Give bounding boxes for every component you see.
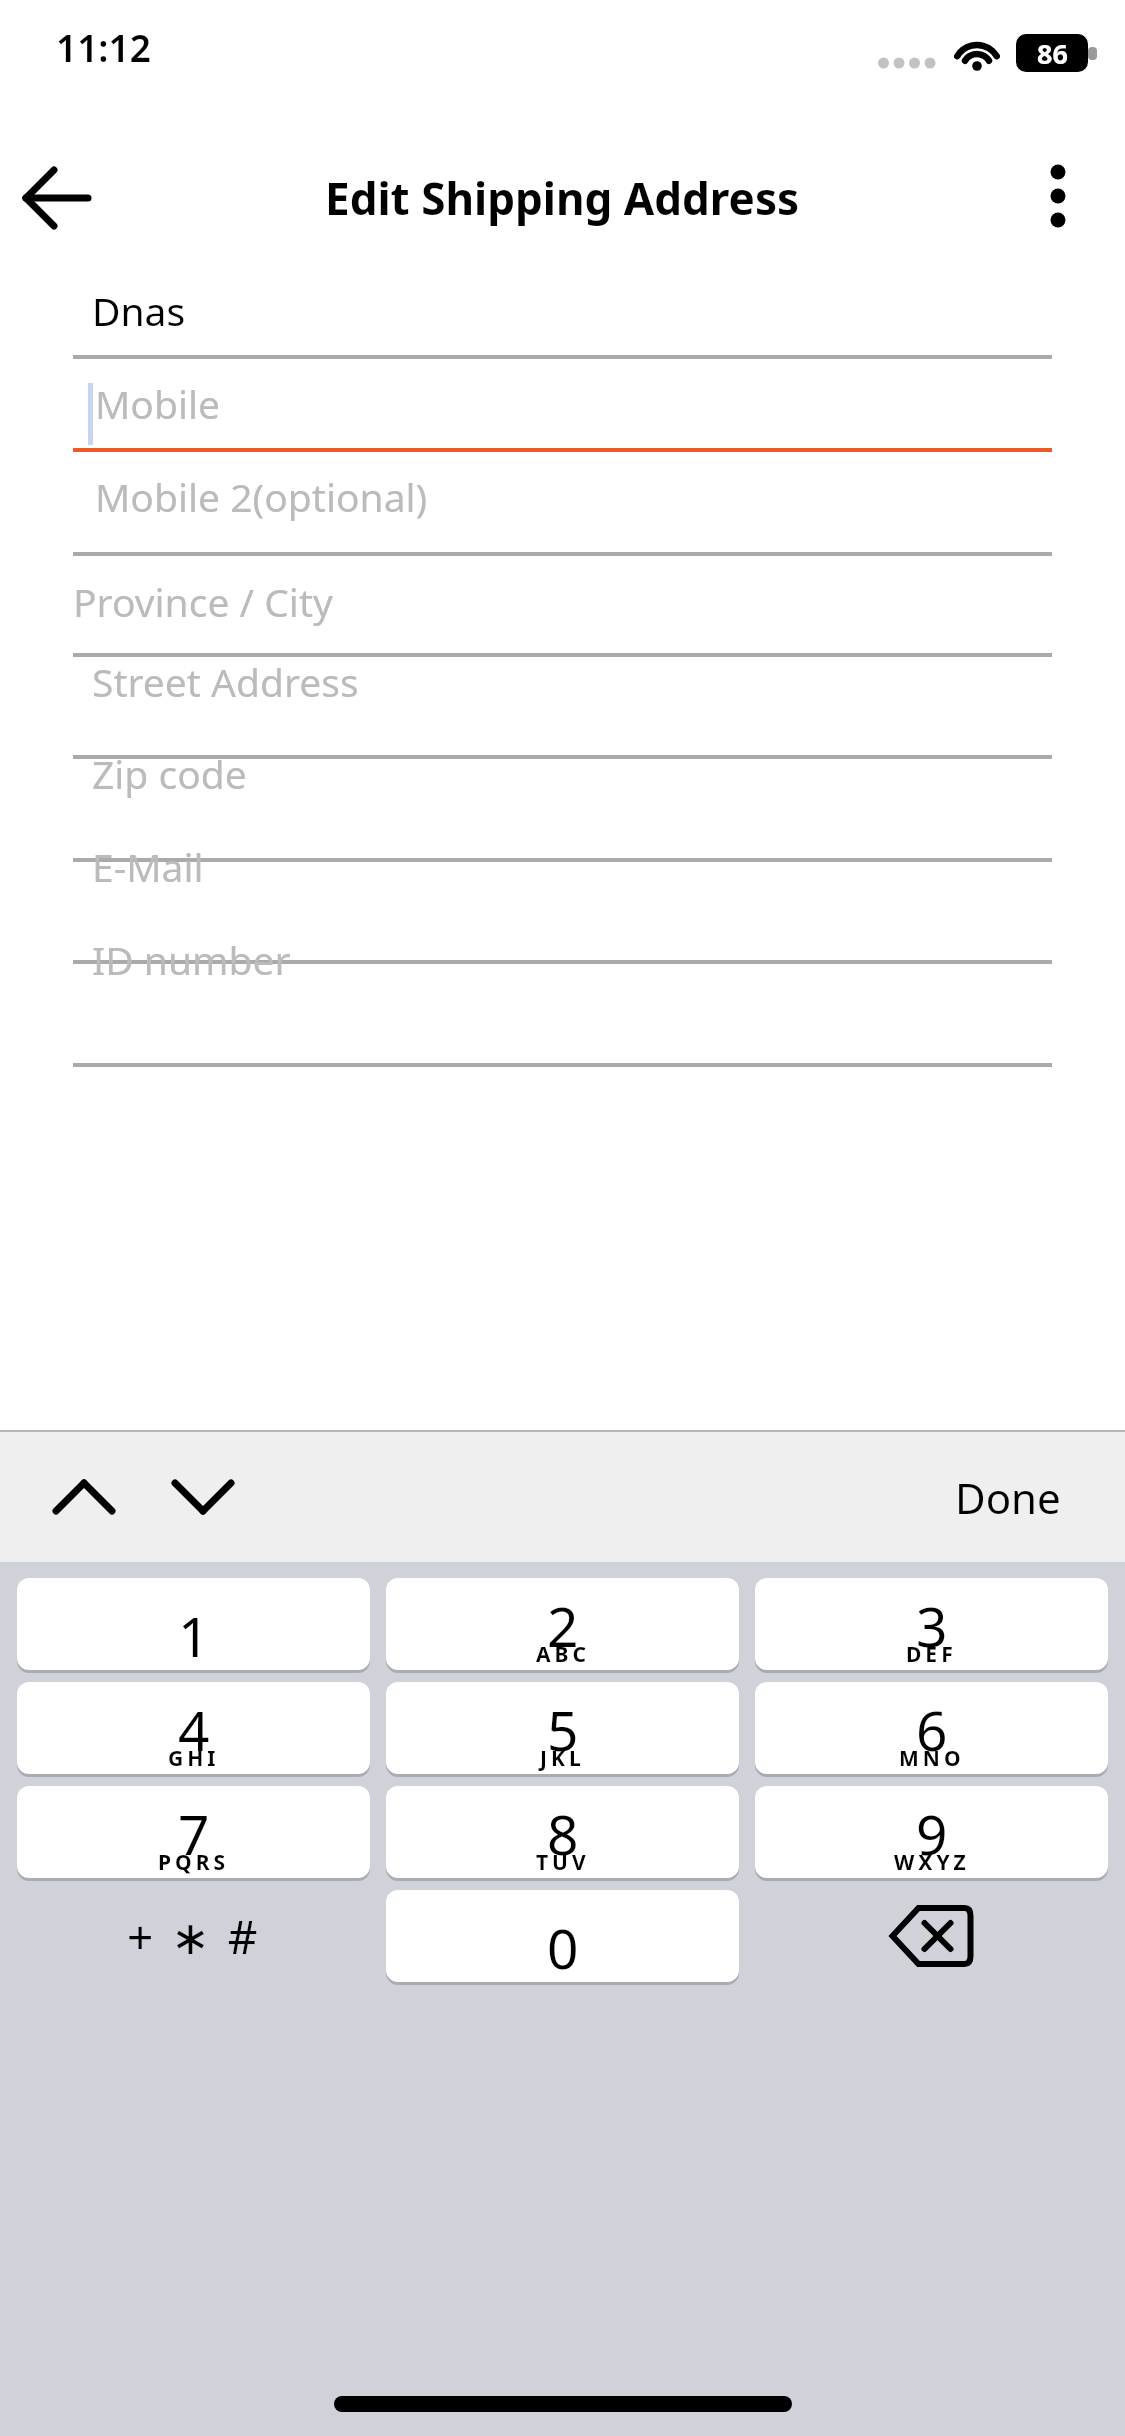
button[interactable] [40, 438, 1085, 538]
button[interactable]: Next field [155, 1452, 251, 1542]
staticText: 86 [1037, 35, 1068, 72]
staticText: GHI [168, 1744, 220, 1773]
button[interactable]: More options [1016, 150, 1108, 242]
staticText: ID number [92, 933, 291, 986]
staticText: Mobile 2(optional) [95, 470, 428, 523]
staticText: PQRS [158, 1848, 229, 1877]
staticText: WXYZ [894, 1848, 970, 1877]
button[interactable]: 9 [755, 1786, 1108, 1878]
staticText: 8 [547, 1796, 579, 1871]
staticText: Mobile [95, 377, 221, 430]
button[interactable] [40, 252, 1085, 352]
button[interactable] [40, 623, 1085, 723]
staticText: Province / City [73, 575, 333, 628]
button[interactable]: 5 [386, 1682, 739, 1774]
staticText: E-Mail [92, 840, 204, 893]
staticText: 5 [547, 1692, 579, 1767]
staticText: Zip code [92, 747, 247, 800]
staticText: DEF [906, 1640, 957, 1669]
button[interactable] [40, 808, 1085, 908]
staticText: 2 [547, 1588, 579, 1663]
button[interactable]: Backspace [755, 1890, 1108, 1982]
button[interactable] [40, 345, 1085, 445]
button[interactable]: 1 [17, 1578, 370, 1670]
button[interactable]: 8 [386, 1786, 739, 1878]
staticText: JKL [540, 1744, 585, 1773]
staticText: Done [955, 1469, 1061, 1526]
staticText: Street Address [92, 655, 359, 708]
staticText: Dnas [92, 284, 186, 337]
button[interactable] [40, 715, 1085, 815]
button[interactable]: 6 [755, 1682, 1108, 1774]
button[interactable]: 4 [17, 1682, 370, 1774]
button[interactable] [40, 901, 1085, 1001]
button[interactable] [40, 543, 1085, 643]
staticText: 4 [178, 1692, 210, 1767]
button[interactable]: Done [955, 1452, 1095, 1542]
staticText: 9 [916, 1796, 948, 1871]
staticText: 6 [916, 1692, 948, 1767]
button[interactable]: 0 [386, 1890, 739, 1982]
staticText: 1 [178, 1598, 210, 1670]
button[interactable]: Previous field [36, 1452, 132, 1542]
staticText: TUV [536, 1848, 590, 1877]
staticText: 0 [547, 1910, 579, 1982]
button[interactable]: + ∗ # [17, 1890, 370, 1982]
button[interactable]: Back [10, 150, 106, 246]
button[interactable]: 2 [386, 1578, 739, 1670]
staticText: 7 [178, 1796, 210, 1871]
staticText: 3 [916, 1588, 948, 1663]
staticText: + ∗ # [127, 1905, 261, 1968]
staticText: Edit Shipping Address [325, 168, 800, 228]
staticText: 11:12 [56, 22, 151, 72]
staticText: ABC [536, 1640, 590, 1669]
button[interactable]: 3 [755, 1578, 1108, 1670]
staticText: MNO [899, 1744, 965, 1773]
button[interactable]: 7 [17, 1786, 370, 1878]
